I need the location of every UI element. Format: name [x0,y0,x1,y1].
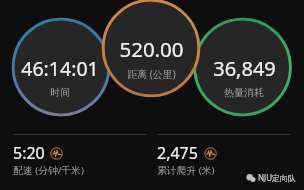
staticText: 距离 (公里) [127,67,176,81]
staticText: 2,475 [157,142,198,164]
other: Heart rate [204,147,217,160]
staticText: 46:14:01 [21,55,99,82]
staticText: 累计爬升 (米) [157,164,215,177]
staticText: 36,849 [213,55,276,82]
staticText: 配速 (分钟/千米) [13,164,84,177]
other: Heart rate [50,147,63,160]
staticText: 热量消耗 [224,86,264,99]
staticText: 5:20 [13,142,45,164]
staticText: 520.00 [119,35,184,63]
staticText: NJU定向队 [258,172,297,183]
staticText: 时间 [50,86,70,99]
